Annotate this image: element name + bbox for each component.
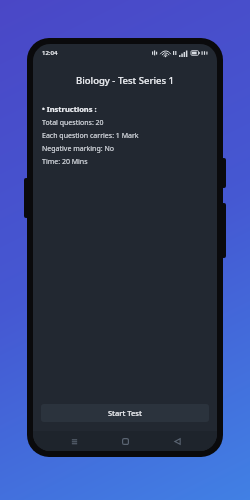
button[interactable]: Back xyxy=(166,431,188,451)
staticText: Total questions: 20 xyxy=(42,118,104,128)
staticText: Each question carries: 1 Mark xyxy=(42,131,139,141)
staticText: • Instructions : xyxy=(42,104,97,114)
button[interactable]: Recent apps xyxy=(63,431,85,451)
staticText: 12:04 xyxy=(42,49,58,57)
button[interactable]: Start Test xyxy=(41,404,209,422)
staticText: Negative marking: No xyxy=(42,144,114,154)
staticText: Start Test xyxy=(108,408,142,418)
button[interactable]: Home xyxy=(114,431,136,451)
staticText: Biology - Test Series 1 xyxy=(33,74,217,87)
staticText: Time: 20 Mins xyxy=(42,157,88,167)
